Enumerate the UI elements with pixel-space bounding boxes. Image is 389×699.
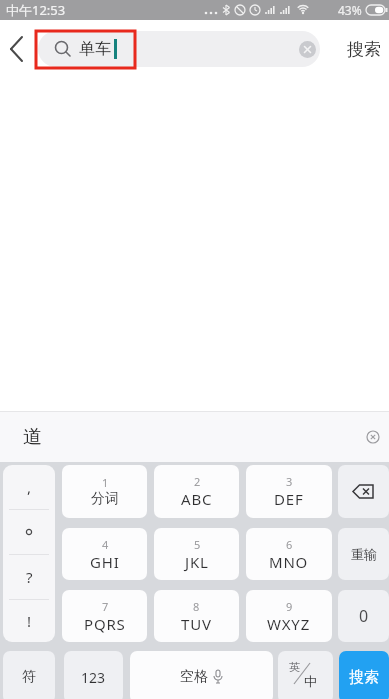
button[interactable]: 0 [338, 590, 389, 642]
button[interactable]: 单车 [38, 31, 320, 67]
staticText: WXYZ [267, 614, 311, 634]
button[interactable] [2, 34, 34, 64]
button[interactable]: 道 [10, 415, 54, 459]
button[interactable]: 4 [62, 528, 147, 580]
button[interactable]: 搜索 [338, 34, 389, 64]
staticText: 英 [289, 660, 300, 674]
button[interactable]: , [3, 465, 55, 509]
staticText: 7 [102, 599, 109, 614]
staticText: 2 [194, 474, 201, 489]
staticText: 43% [338, 2, 362, 18]
staticText: DEF [274, 489, 304, 509]
button[interactable]: 1 [62, 465, 147, 518]
button[interactable]: 英 [278, 651, 333, 699]
staticText: 0 [359, 605, 369, 627]
staticText: ABC [181, 489, 213, 509]
staticText: 道 [23, 425, 42, 449]
staticText: 符 [22, 668, 36, 686]
button[interactable] [299, 41, 316, 58]
staticText: , [27, 477, 32, 497]
button[interactable] [3, 510, 55, 554]
button[interactable] [366, 430, 380, 444]
staticText: 搜索 [347, 39, 381, 60]
button[interactable]: 空格 [130, 651, 273, 699]
button[interactable]: 3 [246, 465, 332, 518]
button[interactable]: 2 [154, 465, 239, 518]
button[interactable]: 5 [154, 528, 239, 580]
staticText: 中 [304, 673, 317, 689]
button[interactable]: ! [3, 600, 55, 642]
staticText: GHI [90, 552, 120, 572]
staticText: ! [27, 611, 32, 631]
staticText: 重输 [351, 546, 377, 562]
staticText: 1 [102, 475, 109, 490]
button[interactable]: 8 [154, 590, 239, 642]
button[interactable] [338, 465, 389, 518]
staticText: 空格 [180, 668, 208, 686]
staticText: 搜索 [349, 668, 379, 687]
staticText: 3 [286, 474, 293, 489]
button[interactable]: , [3, 465, 55, 642]
button[interactable]: 搜索 [339, 651, 389, 699]
staticText: MNO [269, 552, 309, 572]
staticText: ? [26, 567, 33, 587]
staticText: 8 [193, 599, 200, 614]
button[interactable]: ? [3, 555, 55, 599]
button[interactable]: 9 [246, 590, 332, 642]
button[interactable]: 重输 [338, 528, 389, 580]
staticText: 9 [286, 599, 293, 614]
button[interactable]: 6 [246, 528, 332, 580]
staticText: 5 [194, 537, 201, 552]
staticText: 分词 [91, 490, 119, 508]
staticText: 中午12:53 [6, 1, 66, 19]
staticText: JKL [185, 552, 209, 572]
button[interactable]: 123 [64, 651, 123, 699]
staticText: PQRS [84, 614, 126, 634]
staticText: 单车 [79, 39, 111, 59]
button[interactable]: 符 [3, 651, 55, 699]
staticText: 6 [286, 537, 293, 552]
button[interactable]: 7 [62, 590, 147, 642]
staticText: TUV [181, 614, 212, 634]
staticText: 4 [102, 537, 109, 552]
staticText: 123 [81, 668, 106, 687]
